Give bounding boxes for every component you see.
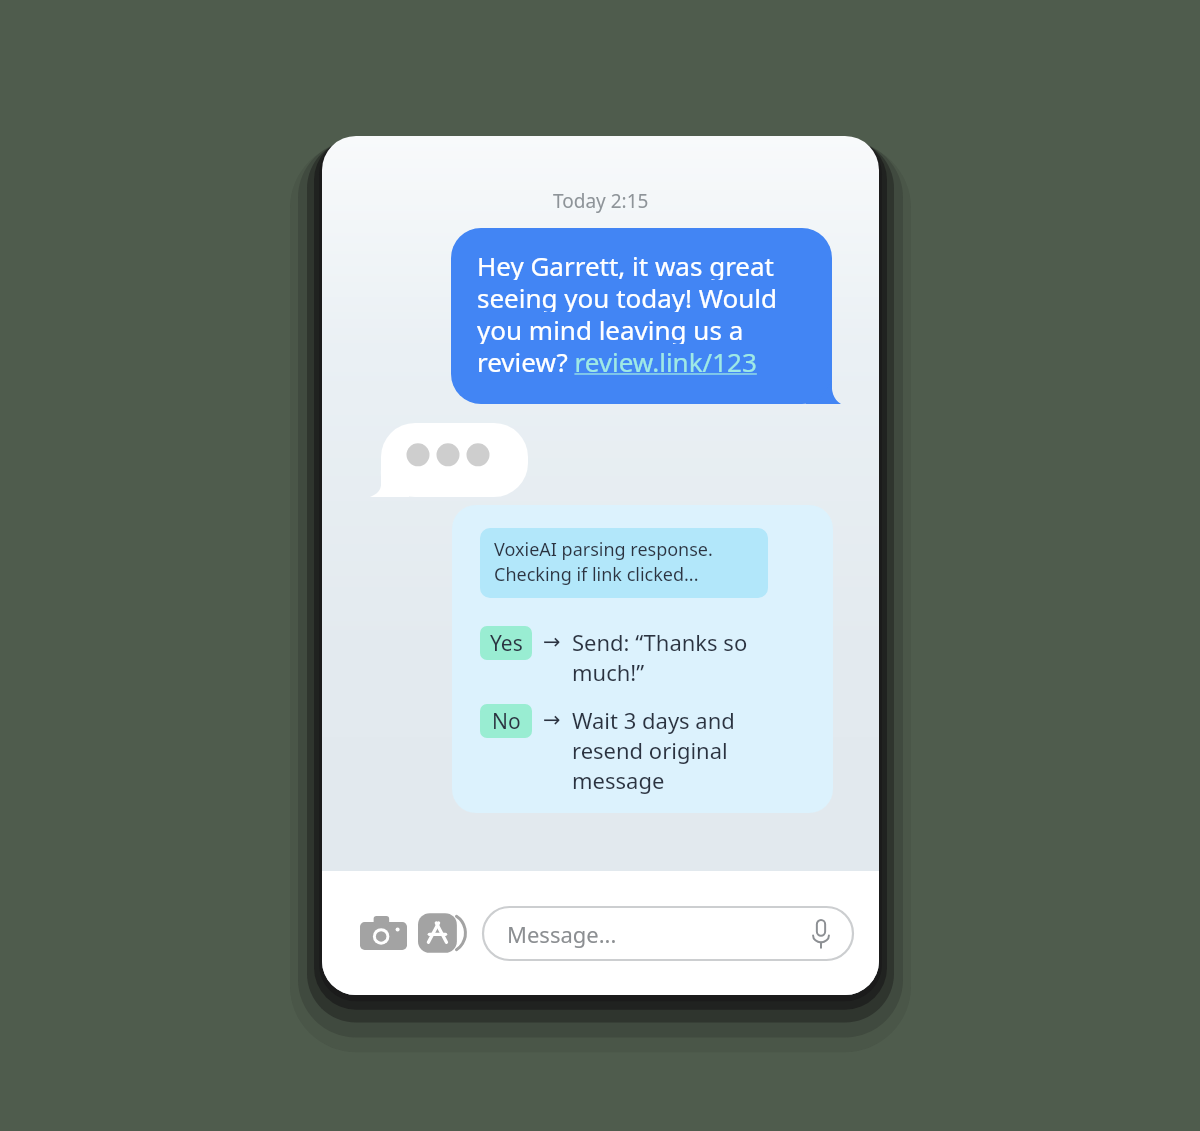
staticText: Wait 3 days and: [572, 705, 735, 735]
button[interactable]: Message...: [483, 907, 853, 960]
button[interactable]: Dictate: [804, 917, 838, 951]
button[interactable]: Take photo: [356, 906, 410, 960]
staticText: VoxieAI parsing response.: [494, 537, 713, 562]
staticText: much!”: [572, 657, 645, 687]
staticText: Message...: [507, 919, 617, 949]
staticText: No: [492, 707, 521, 736]
button[interactable]: Apps: [418, 906, 472, 960]
button[interactable]: No: [480, 704, 735, 795]
staticText: you mind leaving us a: [477, 312, 744, 344]
staticText: Yes: [490, 629, 523, 658]
staticText: Today 2:15: [553, 188, 649, 214]
button[interactable]: Typing indicator: [370, 423, 528, 497]
staticText: Send: “Thanks so: [572, 627, 748, 657]
staticText: seeing you today! Would: [477, 280, 777, 312]
staticText: message: [572, 765, 665, 795]
button[interactable]: Yes: [480, 626, 748, 687]
staticText: →: [543, 630, 561, 654]
button[interactable]: Hey Garrett, it was great: [451, 228, 841, 404]
staticText: Hey Garrett, it was great: [477, 248, 774, 280]
staticText: Checking if link clicked...: [494, 562, 699, 587]
staticText: →: [543, 708, 561, 732]
button[interactable]: VoxieAI parsing response.: [452, 505, 833, 813]
staticText: review? review.link/123: [477, 344, 757, 376]
staticText: resend original: [572, 735, 728, 765]
